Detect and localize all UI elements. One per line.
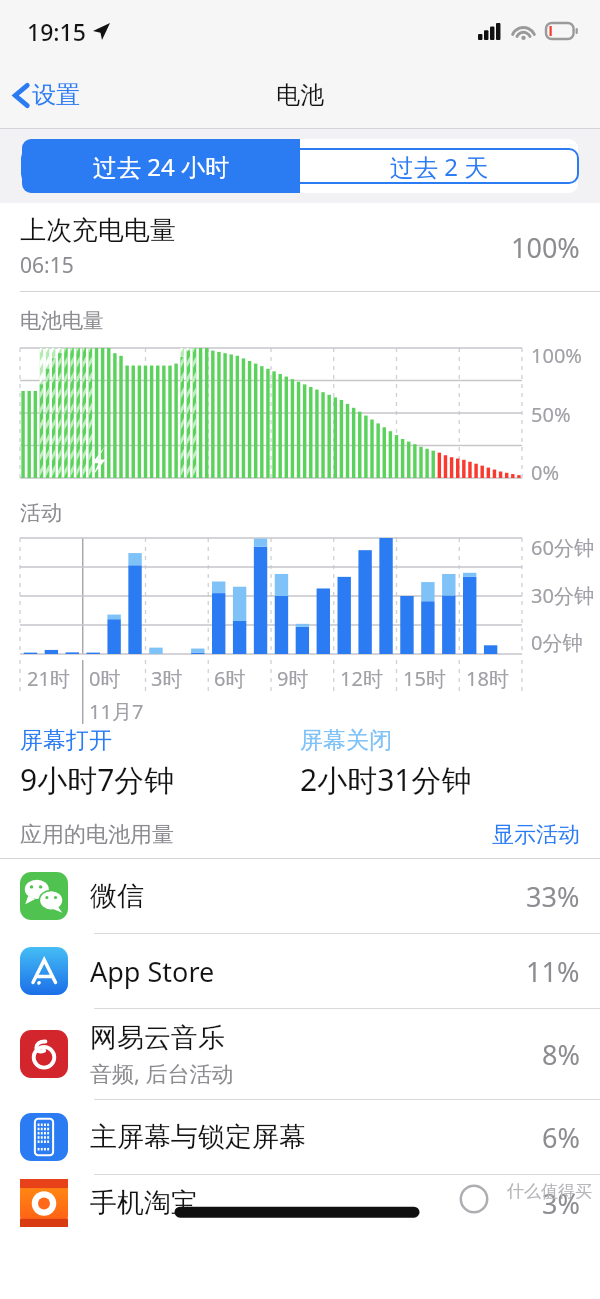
staticText: 6% — [542, 1119, 580, 1156]
button[interactable]: 过去 24 小时 — [22, 139, 300, 193]
staticText: 06:15 — [20, 251, 74, 280]
button[interactable]: 主屏幕与锁定屏幕 — [0, 1100, 600, 1175]
staticText: 过去 2 天 — [390, 150, 489, 183]
staticText: 19:15 — [27, 16, 86, 47]
button[interactable]: 微信 — [0, 859, 600, 934]
staticText: 3% — [542, 1185, 580, 1222]
other: 主屏幕与锁定屏幕 — [20, 1113, 68, 1161]
staticText: 屏幕打开 — [20, 726, 112, 755]
staticText: App Store — [90, 953, 215, 990]
staticText: 设置 — [32, 80, 80, 110]
staticText: 过去 24 小时 — [93, 150, 229, 183]
staticText: 屏幕关闭 — [300, 726, 392, 755]
staticText: 2小时31分钟 — [300, 759, 472, 800]
staticText: 0时 — [89, 665, 121, 692]
staticText: 微信 — [90, 879, 144, 913]
staticText: 100% — [531, 342, 582, 369]
staticText: 11月7日 — [89, 698, 144, 724]
button[interactable]: 显示活动 — [492, 821, 580, 858]
staticText: 33% — [526, 878, 580, 915]
other: 网易云音乐 — [20, 1030, 68, 1078]
staticText: 活动 — [20, 500, 62, 526]
staticText: 什么值得买 — [507, 1181, 592, 1202]
staticText: 12时 — [340, 665, 383, 692]
button[interactable]: 过去 2 天 — [300, 139, 578, 193]
staticText: 3时 — [151, 665, 183, 692]
other: 手机淘宝 — [20, 1179, 68, 1227]
staticText: 11% — [526, 953, 580, 990]
staticText: 0% — [531, 459, 560, 486]
staticText: 网易云音乐 — [90, 1021, 225, 1055]
staticText: 21时 — [27, 665, 70, 692]
staticText: 主屏幕与锁定屏幕 — [90, 1120, 306, 1154]
staticText: 0分钟 — [531, 629, 583, 656]
button[interactable]: 网易云音乐 — [0, 1009, 600, 1100]
staticText: 8% — [542, 1036, 580, 1073]
staticText: 15时 — [403, 665, 446, 692]
staticText: 上次充电电量 — [20, 214, 176, 247]
button[interactable]: 设置 — [0, 72, 92, 118]
staticText: 电池电量 — [20, 308, 104, 334]
staticText: 30分钟 — [531, 582, 594, 609]
staticText: 9小时7分钟 — [20, 759, 175, 800]
staticText: 60分钟 — [531, 534, 594, 561]
staticText: 电池 — [276, 80, 324, 110]
staticText: 显示活动 — [492, 821, 580, 849]
other: App Store — [20, 947, 68, 995]
staticText: 应用的电池用量 — [20, 821, 492, 849]
staticText: 音频, 后台活动 — [90, 1058, 234, 1088]
staticText: 手机淘宝 — [90, 1186, 542, 1220]
staticText: 18时 — [466, 665, 509, 692]
button[interactable]: 手机淘宝 — [0, 1175, 600, 1235]
staticText: 9时 — [277, 665, 309, 692]
staticText: 50% — [531, 401, 571, 428]
other: 微信 — [20, 872, 68, 920]
button[interactable]: App Store — [0, 934, 600, 1009]
staticText: 6时 — [214, 665, 246, 692]
staticText: 100% — [511, 229, 580, 266]
